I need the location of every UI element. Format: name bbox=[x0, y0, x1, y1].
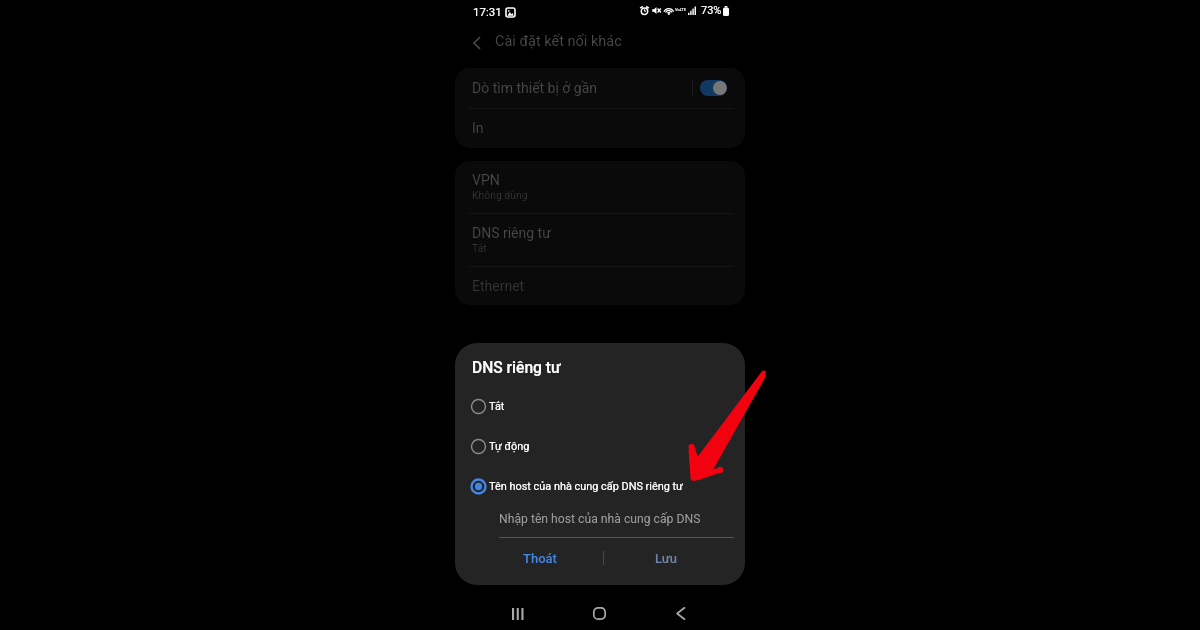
staticText: Thoát bbox=[523, 551, 557, 566]
button[interactable]: Ethernet bbox=[455, 267, 745, 305]
staticText: VPN bbox=[472, 172, 500, 188]
staticText: DNS riêng tư bbox=[472, 359, 561, 377]
staticText: Dò tìm thiết bị ở gần bbox=[472, 80, 598, 96]
button[interactable]: Home bbox=[583, 597, 616, 630]
staticText: DNS riêng tư bbox=[472, 225, 551, 241]
button[interactable]: Thoát bbox=[491, 544, 588, 572]
staticText: Không dùng bbox=[472, 189, 528, 201]
staticText: Tên host của nhà cung cấp DNS riêng tư bbox=[489, 480, 683, 493]
button[interactable]: Back bbox=[465, 31, 489, 55]
button[interactable]: VPN bbox=[455, 161, 745, 213]
staticText: Tự động bbox=[489, 440, 530, 453]
staticText: Ethernet bbox=[472, 278, 525, 294]
button[interactable]: Recent apps bbox=[501, 597, 534, 630]
button[interactable]: Nearby device scanning toggle bbox=[700, 80, 727, 96]
button[interactable]: Dò tìm thiết bị ở gần bbox=[455, 68, 745, 109]
button[interactable]: Tự động bbox=[455, 433, 745, 459]
staticText: In bbox=[472, 120, 484, 136]
staticText: Cài đặt kết nối khác bbox=[495, 33, 622, 50]
button[interactable]: Tên host của nhà cung cấp DNS riêng tư bbox=[455, 473, 745, 499]
staticText: Nhập tên host của nhà cung cấp DNS bbox=[499, 512, 701, 526]
button[interactable]: Back bbox=[664, 597, 697, 630]
staticText: Tắt bbox=[489, 400, 505, 413]
staticText: Lưu bbox=[655, 551, 678, 566]
button[interactable]: Tắt bbox=[455, 393, 745, 419]
staticText: Tắt bbox=[472, 242, 487, 254]
staticText: 73% bbox=[701, 4, 722, 17]
staticText: VoLTE bbox=[675, 7, 687, 12]
button[interactable]: DNS riêng tư bbox=[455, 214, 745, 266]
staticText: 17:31 bbox=[473, 5, 502, 18]
button[interactable]: Lưu bbox=[618, 544, 715, 572]
